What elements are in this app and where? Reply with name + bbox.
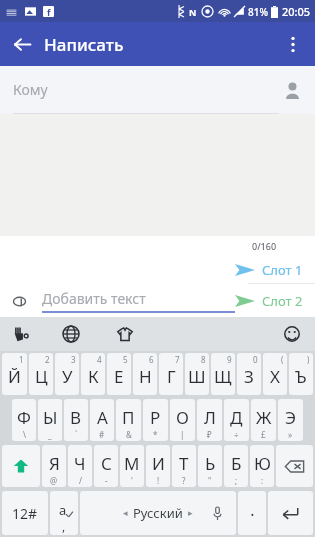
- staticText: Н: [139, 365, 152, 388]
- button[interactable]: Т: [172, 445, 196, 487]
- button[interactable]: Ь: [198, 445, 222, 487]
- button[interactable]: 5: [107, 353, 131, 395]
- button[interactable]: Handwriting: [8, 321, 34, 347]
- staticText: 3: [71, 354, 76, 365]
- staticText: Ю: [254, 452, 271, 475]
- staticText: /: [79, 475, 82, 486]
- staticText: &: [126, 429, 132, 440]
- button[interactable]: П: [116, 399, 141, 441]
- button[interactable]: Themes: [112, 321, 138, 347]
- button[interactable]: А: [90, 399, 114, 441]
- button[interactable]: Change language: [58, 321, 84, 347]
- button[interactable]: Слот 1: [235, 261, 303, 279]
- staticText: Г: [167, 365, 176, 388]
- staticText: Ц: [35, 365, 48, 388]
- button[interactable]: Л: [197, 399, 222, 441]
- button[interactable]: О: [170, 399, 195, 441]
- staticText: *: [153, 429, 158, 440]
- button[interactable]: а: [50, 491, 78, 535]
- button[interactable]: 9: [211, 353, 235, 395]
- button[interactable]: Pick contact: [279, 77, 305, 103]
- staticText: !: [157, 475, 160, 486]
- staticText: ₽: [207, 429, 212, 440]
- button[interactable]: Ю: [250, 445, 274, 487]
- button[interactable]: Ы: [38, 399, 62, 441]
- button[interactable]: Р: [143, 399, 168, 441]
- staticText: У: [62, 365, 73, 388]
- button[interactable]: И: [146, 445, 170, 487]
- staticText: Кому: [13, 80, 48, 99]
- button[interactable]: М: [120, 445, 144, 487]
- button[interactable]: 12#: [2, 491, 48, 535]
- staticText: Ы: [43, 406, 58, 429]
- staticText: Ф: [17, 406, 31, 429]
- button[interactable]: Я: [42, 445, 66, 487]
- button[interactable]: 2: [29, 353, 53, 395]
- staticText: Й: [8, 365, 21, 388]
- button[interactable]: ◂: [80, 491, 236, 535]
- button[interactable]: .: [238, 491, 266, 535]
- staticText: О: [176, 406, 189, 429]
- staticText: С: [101, 452, 112, 475]
- button[interactable]: Attach: [7, 289, 31, 313]
- button[interactable]: С: [94, 445, 118, 487]
- button[interactable]: Ф: [12, 399, 36, 441]
- button[interactable]: 8: [185, 353, 209, 395]
- button[interactable]: Ж: [251, 399, 276, 441]
- staticText: Э: [285, 406, 296, 429]
- staticText: 5: [123, 354, 128, 365]
- button[interactable]: 1: [2, 353, 27, 395]
- staticText: Написать: [44, 33, 124, 56]
- button[interactable]: Кому: [0, 66, 315, 114]
- button[interactable]: Emoji: [279, 321, 305, 347]
- staticText: Е: [114, 365, 124, 388]
- button[interactable]: 0: [237, 353, 261, 395]
- staticText: ;: [235, 475, 238, 486]
- staticText: 4: [97, 354, 102, 365]
- staticText: _: [48, 429, 52, 440]
- button[interactable]: More options: [271, 22, 315, 66]
- button[interactable]: (: [263, 353, 287, 395]
- staticText: 12#: [12, 504, 38, 523]
- staticText: .: [250, 499, 255, 521]
- staticText: Ш: [188, 365, 206, 388]
- button[interactable]: ): [289, 353, 313, 395]
- staticText: f: [47, 6, 51, 17]
- button[interactable]: 7: [159, 353, 183, 395]
- staticText: |: [180, 429, 185, 440]
- staticText: 6: [149, 354, 154, 365]
- button[interactable]: Слот 2: [235, 292, 303, 310]
- staticText: `: [75, 429, 78, 440]
- staticText: Л: [204, 406, 216, 429]
- staticText: ◂: [123, 508, 128, 518]
- button[interactable]: 3: [55, 353, 79, 395]
- button[interactable]: Э: [278, 399, 303, 441]
- button[interactable]: В: [64, 399, 88, 441]
- staticText: 2: [45, 354, 50, 365]
- staticText: ': [131, 475, 133, 486]
- button[interactable]: 4: [81, 353, 105, 395]
- staticText: В: [70, 406, 82, 429]
- staticText: 1: [19, 354, 24, 365]
- button[interactable]: Back: [0, 22, 44, 66]
- staticText: И: [152, 452, 165, 475]
- staticText: Ж: [256, 406, 272, 429]
- button[interactable]: 6: [133, 353, 157, 395]
- staticText: Я: [49, 452, 60, 475]
- staticText: А: [97, 406, 108, 429]
- button[interactable]: Б: [224, 445, 248, 487]
- staticText: Добавить текст: [42, 289, 146, 308]
- staticText: Щ: [214, 365, 232, 388]
- staticText: ?: [182, 475, 186, 486]
- button[interactable]: Ч: [68, 445, 92, 487]
- button[interactable]: Д: [224, 399, 249, 441]
- button[interactable]: Backspace: [276, 445, 313, 487]
- staticText: Б: [231, 452, 242, 475]
- staticText: а: [59, 501, 67, 519]
- staticText: М: [124, 452, 140, 475]
- staticText: 9: [227, 354, 232, 365]
- staticText: 0/160: [252, 240, 277, 252]
- button[interactable]: Enter: [268, 491, 313, 535]
- button[interactable]: Shift: [2, 445, 40, 487]
- staticText: :: [261, 475, 264, 486]
